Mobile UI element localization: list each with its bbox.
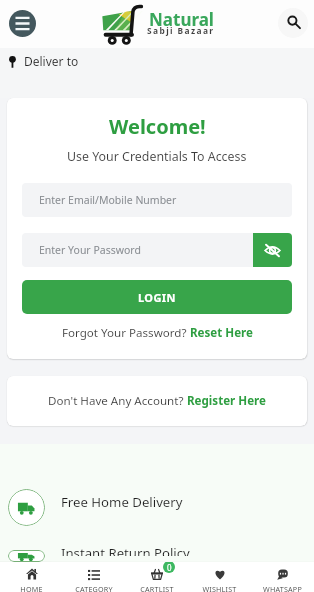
staticText: CARTLIST (140, 584, 174, 592)
staticText: HOME (20, 584, 43, 592)
button[interactable]: Search (278, 8, 308, 38)
staticText: Free Home Delivery (61, 493, 183, 511)
staticText: Forgot Your Password? (62, 325, 190, 341)
staticText: Instant Return Policy (61, 544, 190, 556)
button[interactable]: Don't Have Any Account? (7, 376, 307, 426)
staticText: 0 (167, 562, 172, 573)
button[interactable]: 0 (125, 562, 188, 592)
staticText: Enter Email/Mobile Number (39, 193, 177, 207)
staticText: Don't Have Any Account? (48, 393, 187, 409)
button[interactable]: Show password (253, 233, 292, 267)
button[interactable]: Enter Email/Mobile Number (22, 183, 292, 217)
button[interactable]: Enter Your Password (22, 233, 253, 267)
staticText: WISHLIST (202, 584, 237, 592)
staticText: Natural (149, 8, 214, 31)
staticText: Welcome! (109, 113, 206, 140)
staticText: CATEGORY (75, 584, 113, 592)
button[interactable]: Reset Here (190, 325, 253, 341)
staticText: Enter Your Password (39, 243, 141, 257)
staticText: WHATSAPP (263, 584, 302, 592)
staticText: Register Here (187, 393, 266, 409)
staticText: LOGIN (138, 290, 176, 305)
staticText: Reset Here (190, 325, 253, 341)
button[interactable]: LOGIN (22, 280, 292, 314)
button[interactable]: Open navigation menu (9, 10, 36, 37)
button[interactable]: WISHLIST (188, 562, 251, 592)
button[interactable]: HOME (0, 562, 62, 592)
staticText: Deliver to (24, 53, 79, 69)
button[interactable]: CATEGORY (62, 562, 125, 592)
staticText: Use Your Credentials To Access (67, 148, 247, 165)
button[interactable]: WHATSAPP (251, 562, 314, 592)
staticText: Sabji Bazaar (147, 25, 215, 36)
